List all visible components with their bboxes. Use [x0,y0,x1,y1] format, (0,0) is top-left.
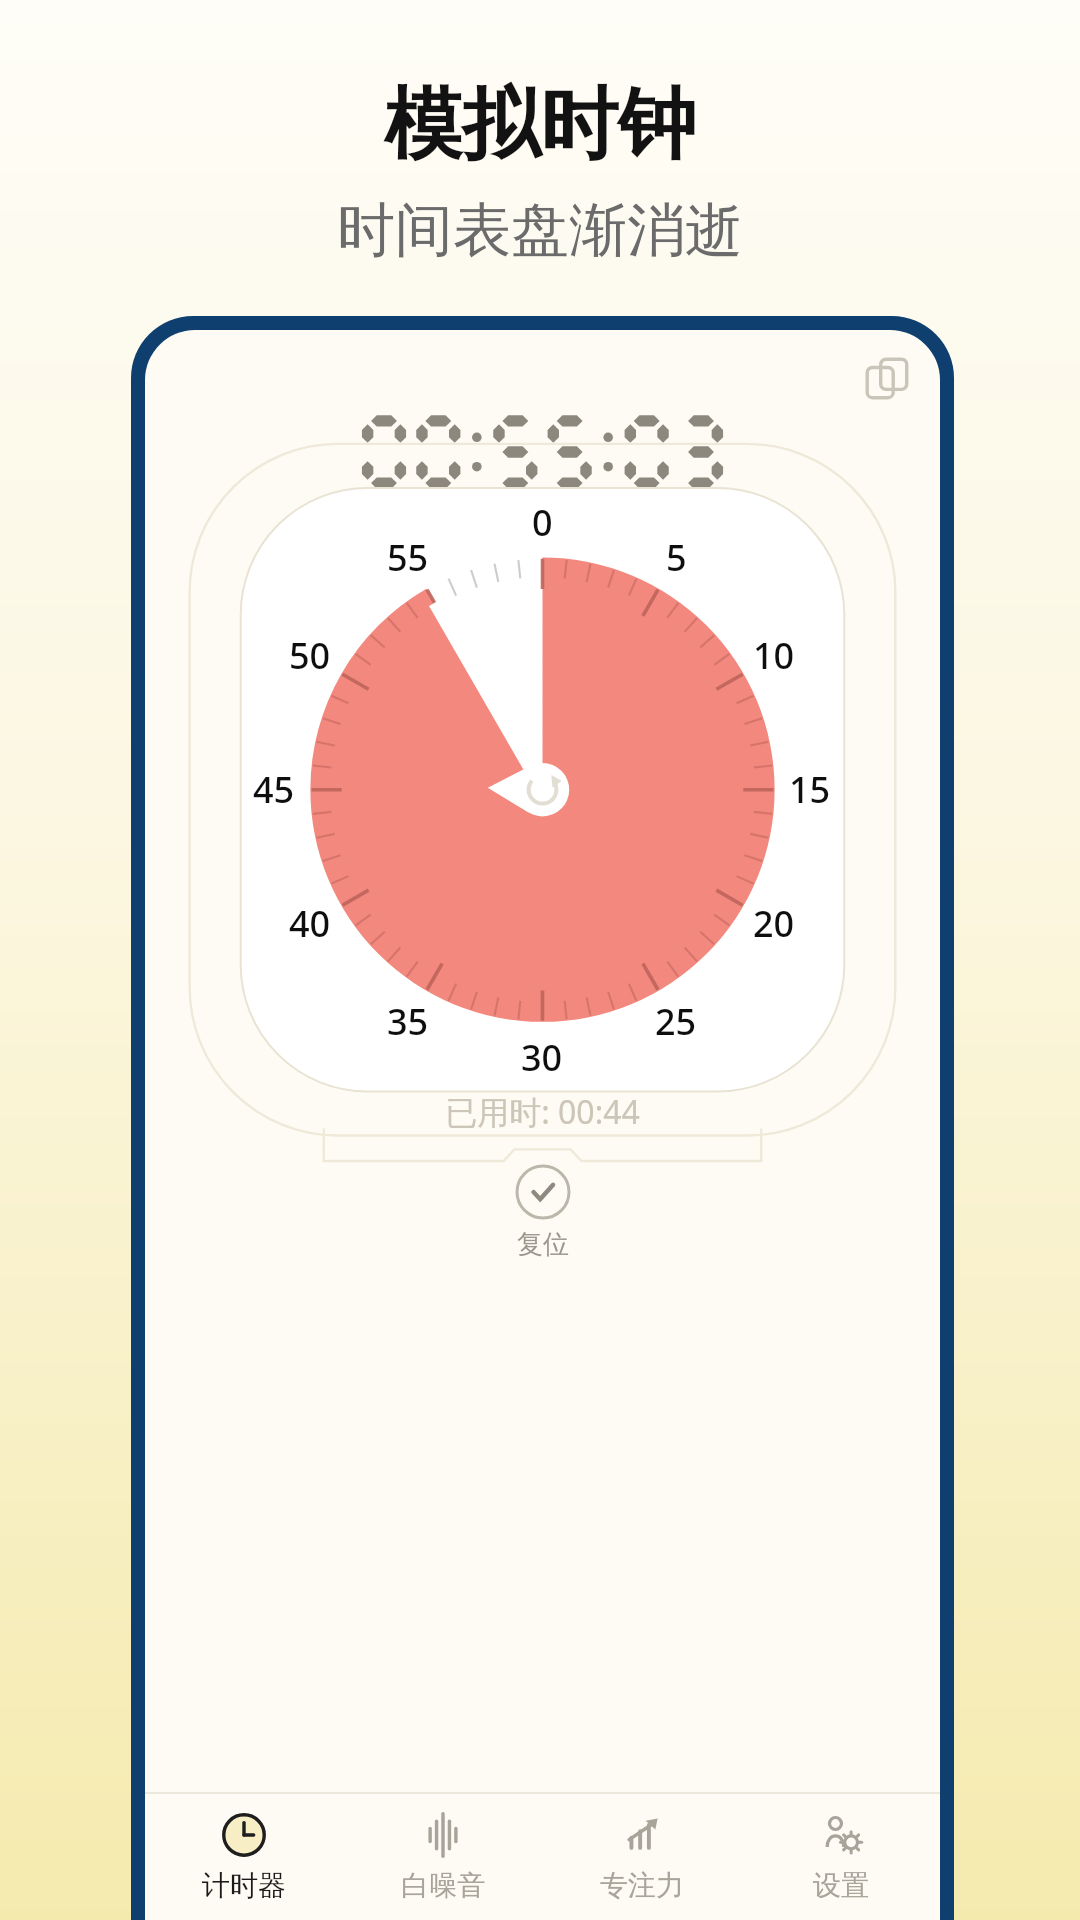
staticText: 计时器 [202,1868,286,1903]
staticText: 45 [253,765,295,814]
button[interactable]: 设置 [741,1794,940,1920]
button[interactable]: 专注力 [542,1794,741,1920]
staticText: 复位 [517,1228,569,1261]
staticText: 50 [289,631,331,680]
staticText: 30 [521,1033,563,1082]
button[interactable]: Visual timer dial [145,544,940,1084]
staticText: 白噪音 [401,1868,485,1903]
staticText: 已用时: 00:44 [445,1090,640,1134]
staticText: 55 [387,533,429,582]
staticText: 40 [289,899,331,948]
staticText: 35 [387,997,429,1046]
staticText: 15 [789,765,831,814]
staticText: 模拟时钟 [384,76,696,174]
staticText: 专注力 [600,1868,684,1903]
staticText: 0 [532,498,553,547]
button[interactable]: Screenshot [862,354,914,406]
staticText: 设置 [813,1868,869,1903]
staticText: 5 [666,533,687,582]
button[interactable]: 计时器 [145,1794,343,1920]
staticText: 20 [753,899,795,948]
staticText: 时间表盘渐消逝 [337,194,743,267]
button[interactable]: 白噪音 [343,1794,542,1920]
staticText: 25 [655,997,697,1046]
staticText: 10 [753,631,795,680]
button[interactable]: 复位 [495,1160,591,1265]
